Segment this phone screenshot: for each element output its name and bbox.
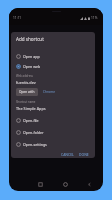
button[interactable]: Open with xyxy=(16,88,38,96)
button[interactable]: DONE xyxy=(77,149,91,160)
button[interactable]: Open web xyxy=(11,60,95,72)
staticText: 11:11 xyxy=(13,16,22,20)
button[interactable]: Open app xyxy=(11,50,95,62)
button[interactable]: Home xyxy=(57,176,73,191)
staticText: Open web xyxy=(23,64,41,69)
staticText: 11% xyxy=(91,16,98,20)
staticText: Web address xyxy=(16,74,33,78)
staticText: Shortcut name xyxy=(16,100,36,104)
staticText: fuentis.dev xyxy=(16,80,36,85)
staticText: Open with xyxy=(19,90,35,94)
button[interactable]: CANCEL xyxy=(59,149,76,160)
button[interactable]: Chrome xyxy=(40,88,58,96)
staticText: Open app xyxy=(23,54,40,59)
button[interactable]: Recents xyxy=(32,176,48,191)
staticText: Chrome xyxy=(43,90,55,94)
staticText: Open-settings xyxy=(23,142,47,147)
button[interactable]: Open-folder xyxy=(11,126,95,138)
staticText: The Simple Apps xyxy=(16,106,46,111)
button[interactable]: Open-settings xyxy=(11,138,95,150)
staticText: Open-file xyxy=(23,118,39,123)
button[interactable]: Back xyxy=(81,176,97,191)
staticText: Add shortcut xyxy=(16,36,44,42)
staticText: Open-folder xyxy=(23,130,44,135)
button[interactable]: Open-file xyxy=(11,114,95,126)
